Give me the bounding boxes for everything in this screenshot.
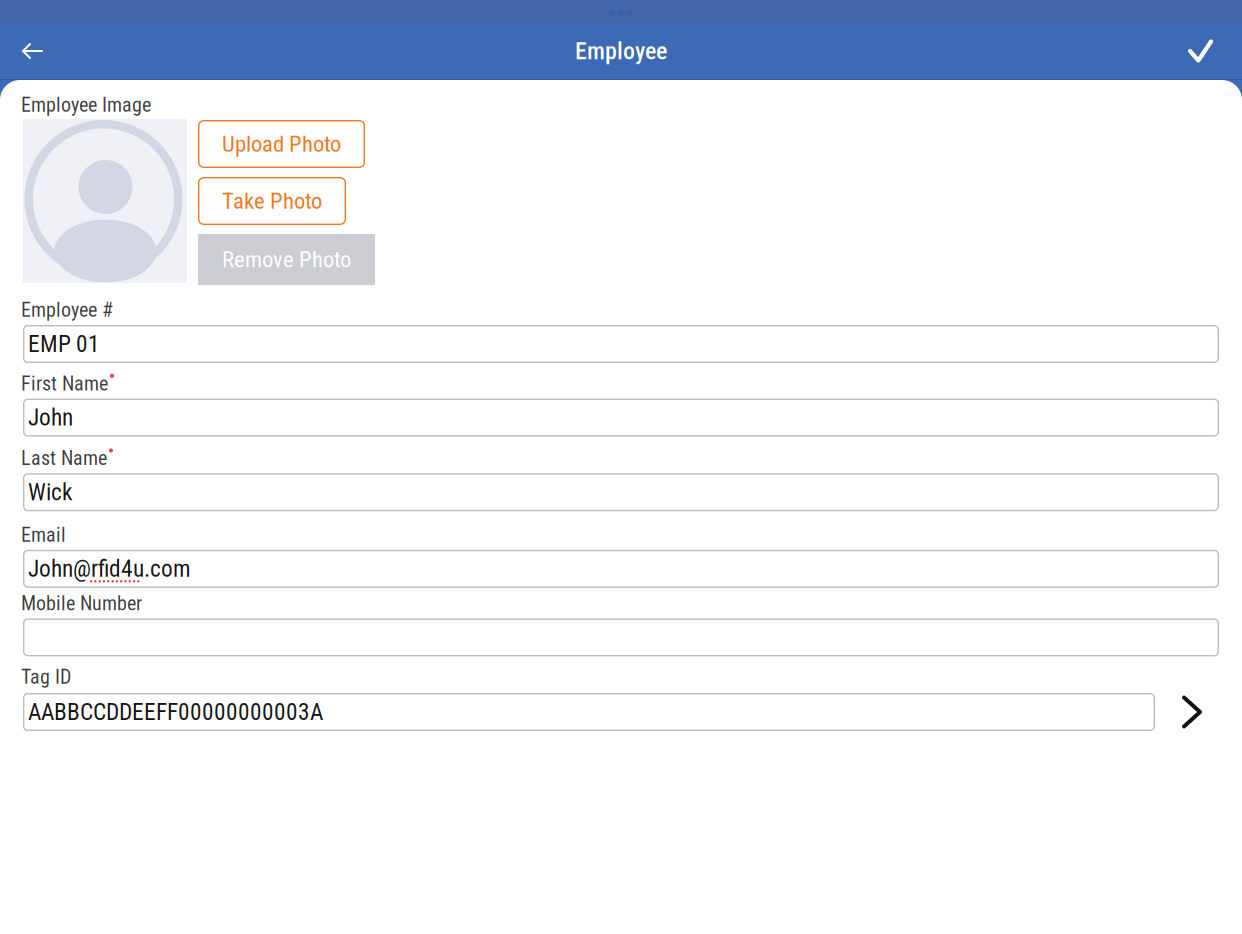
staticText: Upload Photo (222, 131, 341, 157)
staticText: Email (21, 523, 66, 546)
button[interactable]: Remove Photo (198, 234, 375, 285)
staticText: Wick (28, 478, 73, 506)
button[interactable]: Mobile Number (23, 618, 1219, 656)
button[interactable]: Last Name (23, 473, 1219, 511)
button[interactable]: Scan tag (1155, 692, 1219, 732)
staticText: Remove Photo (222, 246, 351, 273)
button[interactable] (23, 693, 1155, 731)
staticText: EMP 01 (28, 330, 100, 358)
button[interactable]: Upload Photo (198, 120, 365, 168)
button[interactable]: Back (0, 22, 64, 80)
button[interactable]: Employee # (23, 325, 1219, 363)
staticText: John (28, 404, 73, 431)
staticText: Tag ID (21, 665, 71, 689)
staticText: Employee Image (21, 93, 151, 117)
button[interactable]: Email (23, 550, 1219, 588)
staticText: Employee # (21, 298, 113, 322)
staticText: Take Photo (222, 188, 322, 214)
button[interactable]: Take Photo (198, 177, 346, 225)
button[interactable]: First Name (23, 399, 1219, 437)
staticText: Last Name (21, 446, 107, 470)
staticText: Mobile Number (21, 592, 142, 615)
staticText: John@rfid4u.com (28, 555, 191, 582)
staticText: AABBCCDDEEFF00000000003A (28, 698, 323, 726)
button[interactable]: Save (1166, 22, 1242, 80)
staticText: First Name (21, 372, 108, 395)
staticText: Employee (575, 37, 667, 65)
